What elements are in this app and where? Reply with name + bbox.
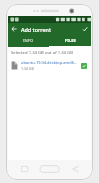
staticText: Selected 1.34 GB out of 1.34 GB <box>11 50 73 56</box>
staticText: FILES <box>65 38 76 44</box>
staticText: 1.34 GB <box>21 66 34 71</box>
staticText: INFO <box>23 38 34 44</box>
button[interactable]: Add <box>79 23 91 35</box>
button[interactable]: ubuntu-19.04-desktop-amd64.iso <box>8 58 91 72</box>
staticText: Add torrent <box>21 26 51 33</box>
staticText: ubuntu-19.04-desktop-amd64.iso <box>21 60 78 65</box>
button[interactable]: FILES <box>49 35 91 46</box>
button[interactable]: INFO <box>8 35 49 46</box>
button[interactable]: Select file <box>78 60 89 71</box>
button[interactable]: Navigate up <box>8 23 20 35</box>
